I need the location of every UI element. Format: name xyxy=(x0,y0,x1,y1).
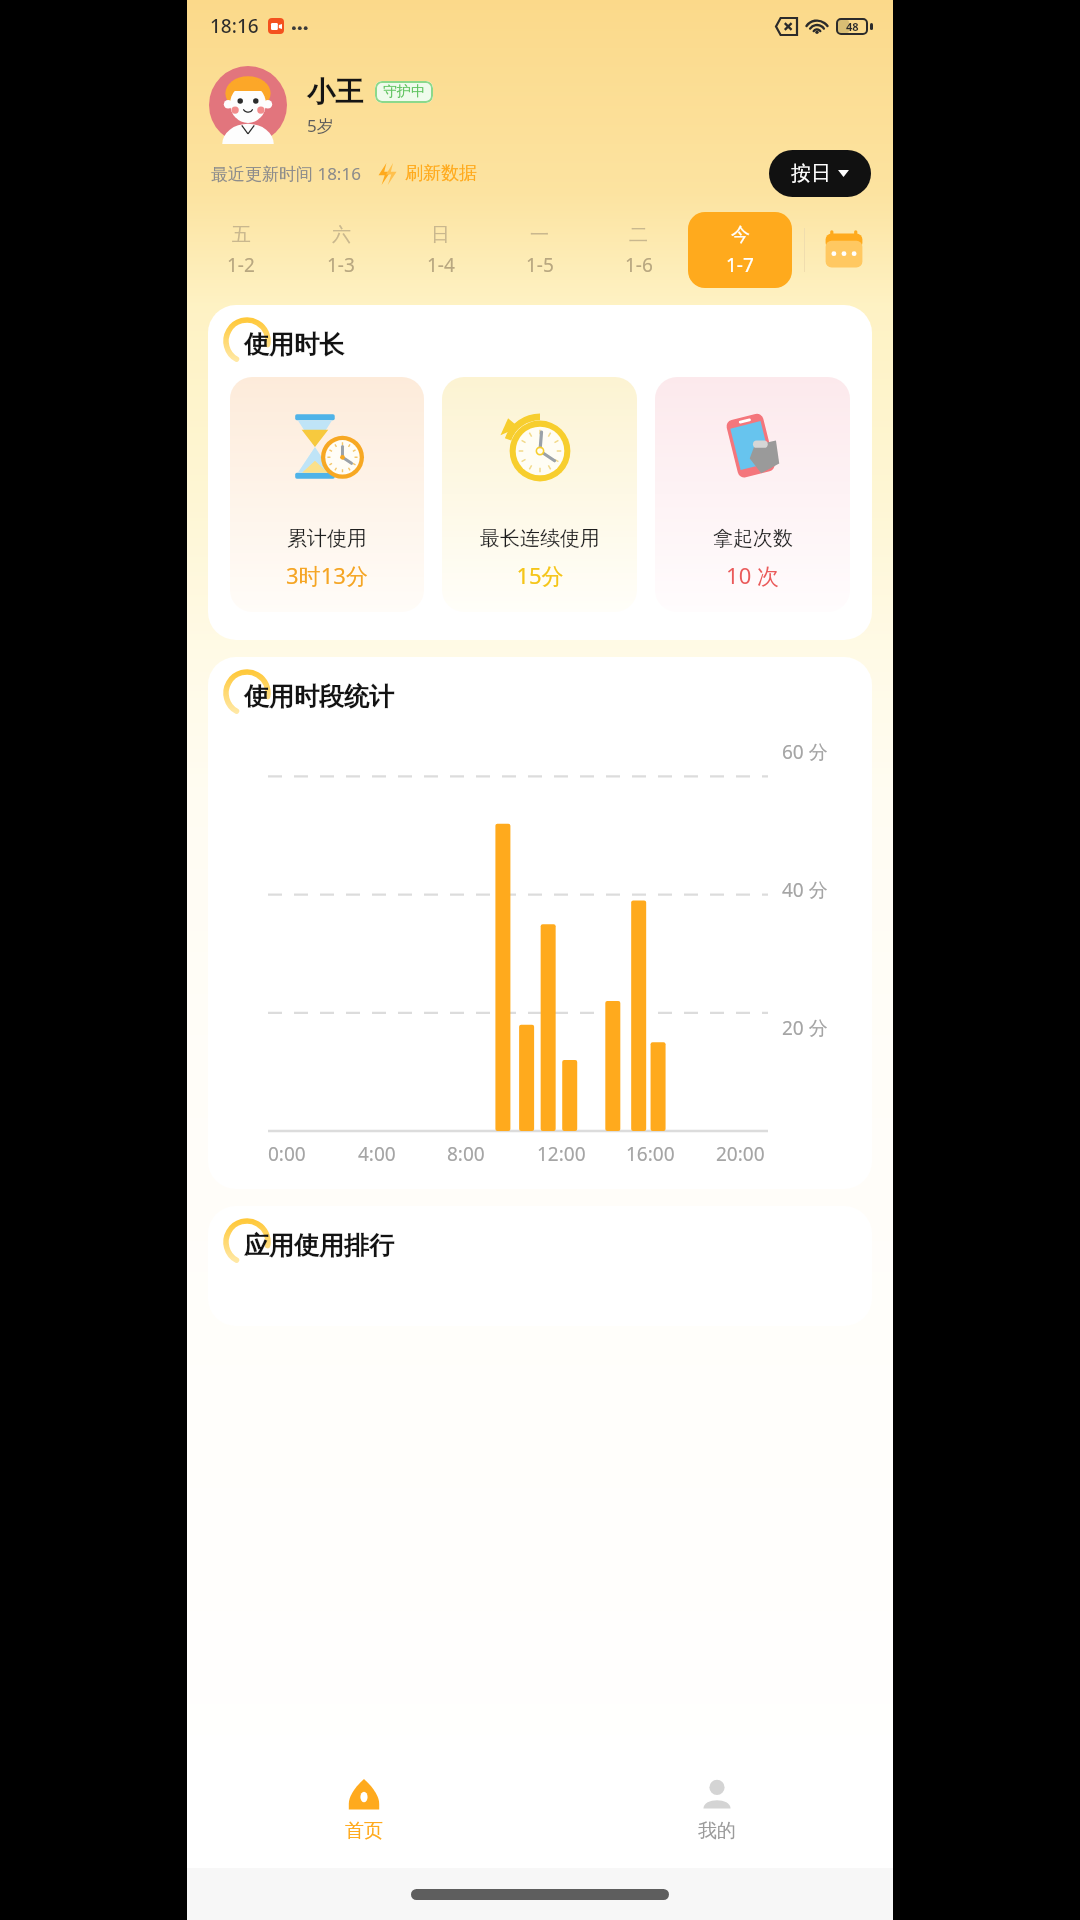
staticText: 小王 xyxy=(307,74,363,109)
staticText: 1-5 xyxy=(526,252,554,278)
button[interactable]: 拿起次数 xyxy=(655,377,850,612)
button[interactable]: 刷新数据 xyxy=(375,162,477,185)
staticText: 使用时长 xyxy=(244,329,344,360)
staticText: 16:00 xyxy=(626,1141,675,1167)
button[interactable]: 首页 xyxy=(187,1750,540,1868)
staticText: 守护中 xyxy=(383,83,425,101)
staticText: 最近更新时间 18:16 xyxy=(211,162,361,185)
button[interactable]: 六 xyxy=(291,211,391,289)
staticText: 拿起次数 xyxy=(713,526,793,551)
button[interactable]: 最长连续使用 xyxy=(442,377,637,612)
staticText: 二 xyxy=(629,223,648,247)
staticText: 15分 xyxy=(516,560,564,590)
staticText: 4:00 xyxy=(358,1141,396,1167)
staticText: 我的 xyxy=(698,1819,736,1843)
staticText: 18:16 xyxy=(210,13,259,39)
button[interactable]: 日 xyxy=(391,211,490,289)
staticText: 1-7 xyxy=(726,252,754,278)
staticText: 20:00 xyxy=(716,1141,765,1167)
staticText: 五 xyxy=(232,223,251,247)
staticText: 六 xyxy=(332,223,351,247)
staticText: 累计使用 xyxy=(287,526,367,551)
button[interactable]: 我的 xyxy=(540,1750,893,1868)
staticText: 1-6 xyxy=(625,252,653,278)
button[interactable]: 累计使用 xyxy=(230,377,424,612)
staticText: 3时13分 xyxy=(286,560,368,590)
staticText: 一 xyxy=(530,223,549,247)
staticText: 60 分 xyxy=(782,739,828,765)
staticText: 使用时段统计 xyxy=(244,681,394,712)
button[interactable]: 按日 xyxy=(769,150,871,197)
button[interactable]: 一 xyxy=(490,211,589,289)
staticText: 0:00 xyxy=(268,1141,306,1167)
staticText: 1-4 xyxy=(427,252,455,278)
staticText: 按日 xyxy=(791,161,831,186)
button[interactable]: 二 xyxy=(589,211,688,289)
staticText: 48 xyxy=(846,19,859,34)
button[interactable]: 今 xyxy=(688,212,792,288)
staticText: 20 分 xyxy=(782,1015,828,1041)
staticText: 10 次 xyxy=(726,560,779,590)
staticText: 8:00 xyxy=(447,1141,485,1167)
staticText: 1-2 xyxy=(227,252,255,278)
staticText: 日 xyxy=(431,223,450,247)
staticText: 刷新数据 xyxy=(405,162,477,185)
staticText: 应用使用排行 xyxy=(244,1230,394,1261)
button[interactable]: 选择日期 xyxy=(805,211,883,289)
staticText: 最长连续使用 xyxy=(480,526,600,551)
button[interactable]: 小王 xyxy=(209,66,893,144)
staticText: 5岁 xyxy=(307,114,334,137)
staticText: 12:00 xyxy=(537,1141,586,1167)
staticText: 今 xyxy=(731,223,750,247)
staticText: 40 分 xyxy=(782,877,828,903)
staticText: 首页 xyxy=(345,1819,383,1843)
button[interactable]: 五 xyxy=(191,211,291,289)
staticText: 1-3 xyxy=(327,252,355,278)
